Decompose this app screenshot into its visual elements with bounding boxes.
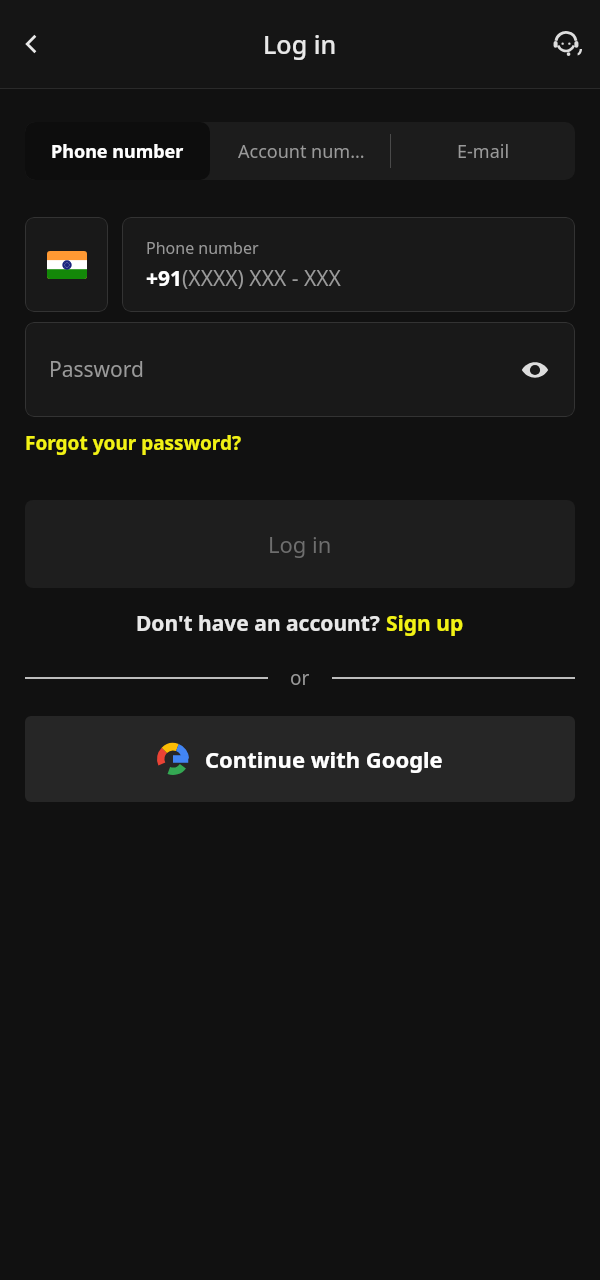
button[interactable]: Continue with Google (25, 716, 575, 802)
button[interactable]: E-mail (392, 122, 575, 180)
button[interactable]: Select country (25, 217, 108, 312)
staticText: +91(XXXX) XXX - XXX (146, 264, 341, 293)
button[interactable]: Support (542, 20, 590, 68)
staticText: or (290, 665, 310, 691)
button[interactable]: Show password (515, 350, 555, 390)
staticText: E-mail (457, 139, 510, 164)
staticText: Log in (263, 27, 337, 61)
button[interactable]: Don't have an account? (136, 609, 464, 638)
staticText: Continue with Google (205, 744, 443, 774)
button[interactable]: Log in (25, 500, 575, 588)
button[interactable]: Account num... (210, 122, 392, 180)
staticText: Password (49, 355, 144, 384)
staticText: Phone number (146, 237, 259, 259)
button[interactable]: Phone number (25, 122, 210, 180)
staticText: Forgot your password? (25, 430, 241, 456)
staticText: Don't have an account? (136, 609, 386, 638)
staticText: Phone number (51, 139, 184, 164)
button[interactable]: Forgot your password? (25, 430, 241, 456)
button[interactable]: Password (25, 322, 575, 417)
button[interactable]: Phone number (122, 217, 575, 312)
staticText: Account num... (238, 139, 365, 164)
staticText: Log in (268, 529, 332, 559)
staticText: Sign up (386, 609, 464, 638)
button[interactable]: Back (10, 22, 54, 66)
